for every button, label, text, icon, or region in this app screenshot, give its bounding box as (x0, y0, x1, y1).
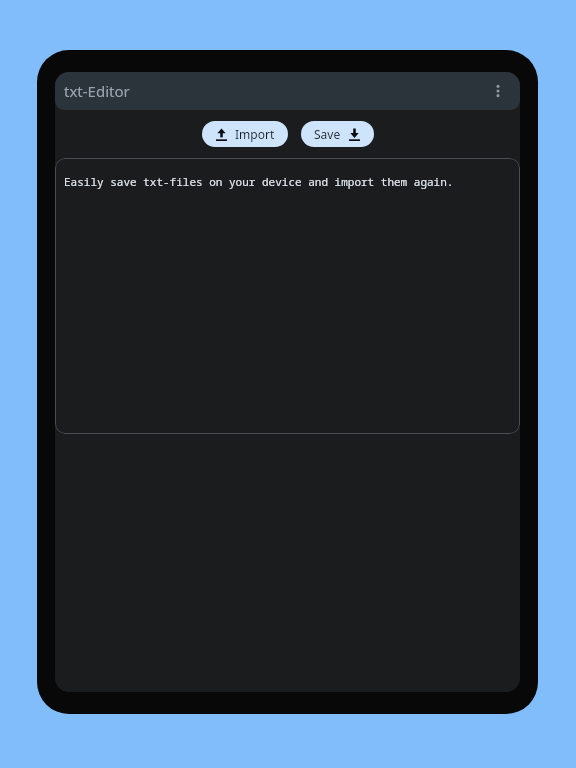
button[interactable]: More options (485, 78, 511, 104)
button[interactable]: Save (301, 121, 374, 147)
button[interactable]: Import (202, 121, 288, 147)
staticText: txt-Editor (64, 81, 130, 101)
button[interactable]: Easily save txt-files on your device and… (55, 158, 520, 434)
staticText: Import (235, 126, 275, 142)
staticText: Save (314, 126, 341, 142)
staticText: Easily save txt-files on your device and… (64, 174, 454, 189)
